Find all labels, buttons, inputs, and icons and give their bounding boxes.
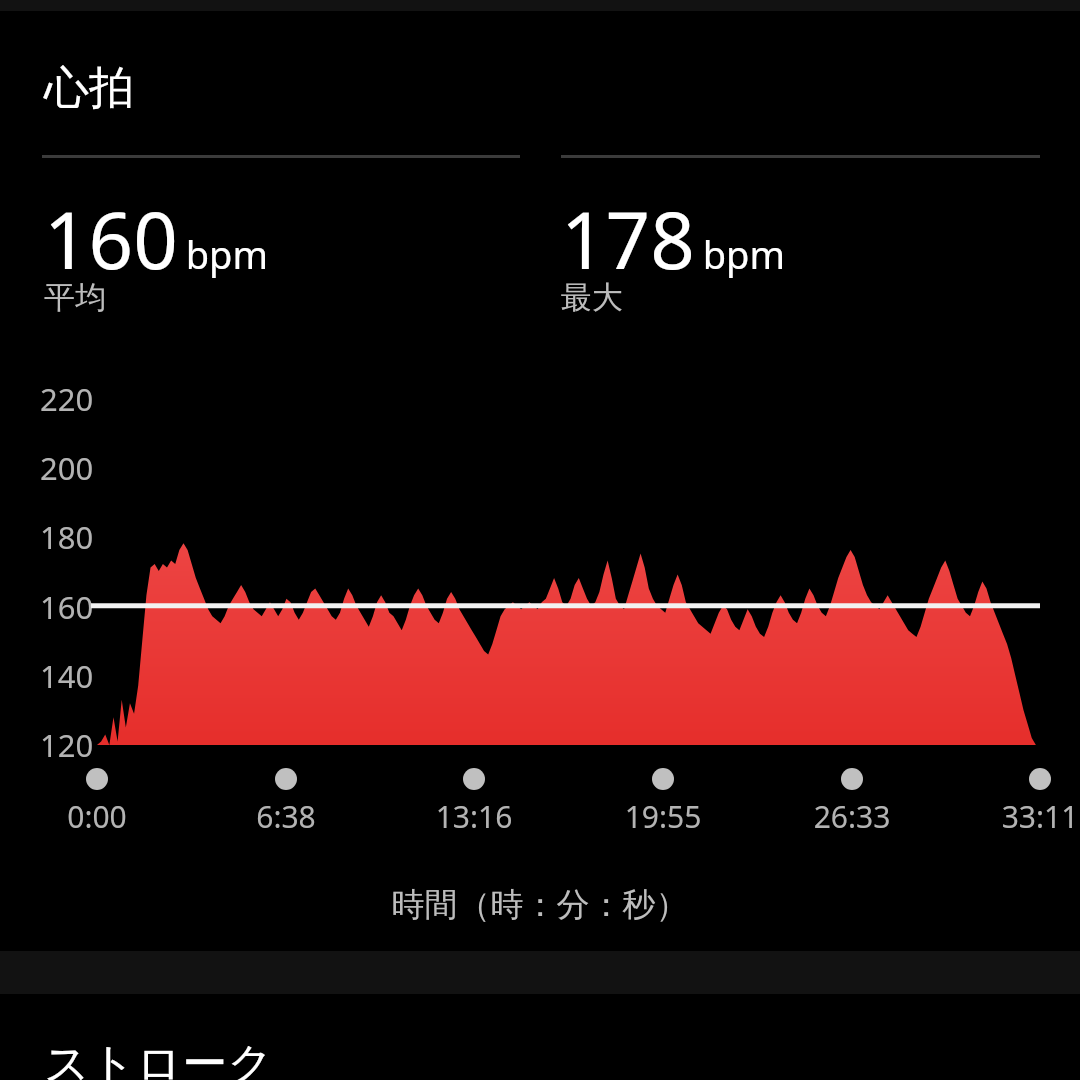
staticText: 140 bbox=[40, 655, 94, 697]
staticText: 160 bbox=[40, 586, 94, 628]
button[interactable]: 心拍 bbox=[44, 60, 134, 117]
staticText: 26:33 bbox=[792, 796, 912, 838]
staticText: 時間（時：分：秒） bbox=[0, 884, 1080, 936]
staticText: 120 bbox=[40, 724, 94, 766]
staticText: 6:38 bbox=[226, 796, 346, 838]
button[interactable]: 160 bpm bbox=[44, 186, 504, 320]
button[interactable]: 178 bpm bbox=[561, 186, 1021, 320]
staticText: 180 bbox=[40, 516, 94, 558]
staticText: 220 bbox=[40, 378, 94, 420]
staticText: 33:11 bbox=[980, 796, 1080, 838]
staticText: 19:55 bbox=[603, 796, 723, 838]
staticText: 13:16 bbox=[414, 796, 534, 838]
staticText: 200 bbox=[40, 447, 94, 489]
button[interactable]: Heart rate chart bbox=[0, 360, 1080, 760]
staticText: 160 bpm bbox=[44, 186, 268, 292]
staticText: 平均 bbox=[44, 278, 106, 317]
staticText: 0:00 bbox=[37, 796, 157, 838]
staticText: 最大 bbox=[561, 278, 623, 317]
button[interactable]: ストローク bbox=[44, 1036, 274, 1080]
staticText: 178 bpm bbox=[561, 186, 785, 292]
